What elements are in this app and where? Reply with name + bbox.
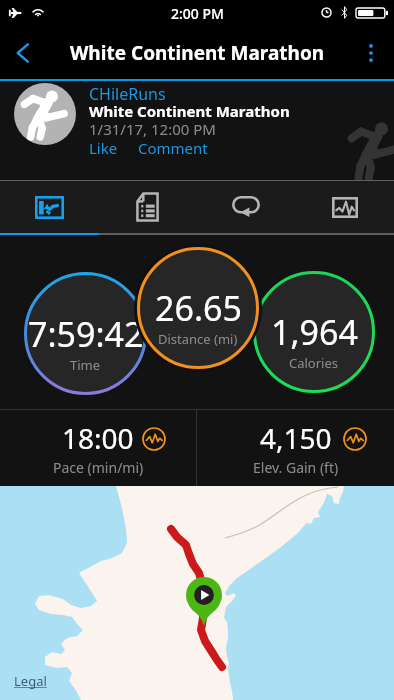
button[interactable]: 18:00	[0, 410, 196, 486]
staticText: 7:59:42	[28, 311, 144, 357]
button[interactable]: Laps	[196, 181, 295, 233]
staticText: 4,150	[260, 419, 332, 457]
staticText: 18:00	[62, 419, 134, 457]
staticText: White Continent Marathon	[70, 40, 325, 66]
button[interactable]: Legal	[0, 486, 394, 700]
button[interactable]: Activity	[0, 181, 98, 233]
button[interactable]: Like	[89, 138, 118, 158]
button[interactable]: Comment	[138, 138, 208, 158]
staticText: 2:00 PM	[171, 4, 224, 23]
button[interactable]: 4,150	[197, 410, 394, 486]
staticText: Distance (mi)	[158, 330, 238, 348]
button[interactable]: Details	[98, 181, 196, 233]
button[interactable]: Legal	[14, 672, 47, 690]
staticText: Pace (min/mi)	[53, 458, 144, 477]
button[interactable]: Graph	[295, 181, 394, 233]
staticText: Calories	[289, 354, 339, 372]
staticText: CHileRuns	[89, 83, 166, 105]
staticText: Time	[70, 356, 101, 374]
staticText: 26.65	[155, 285, 242, 331]
staticText: 1/31/17, 12:00 PM	[89, 119, 216, 139]
staticText: Elev. Gain (ft)	[253, 458, 339, 477]
staticText: 1,964	[271, 309, 358, 355]
staticText: White Continent Marathon	[89, 101, 290, 121]
button[interactable]: More options	[348, 30, 394, 76]
button[interactable]: Back	[0, 30, 46, 76]
